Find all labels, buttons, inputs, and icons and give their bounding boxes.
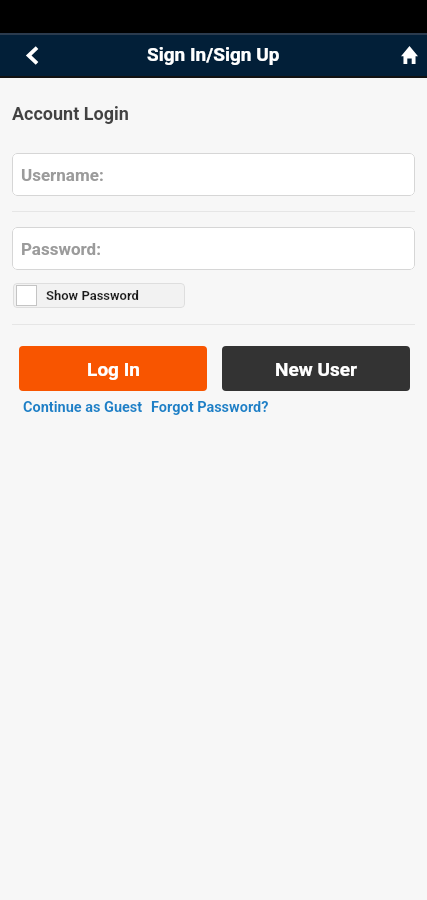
button[interactable]: Username: <box>12 153 415 196</box>
button[interactable]: New User <box>222 346 410 391</box>
staticText: Password: <box>21 239 101 259</box>
button[interactable]: Home <box>392 35 427 76</box>
button[interactable]: Forgot Password? <box>151 399 269 416</box>
staticText: New User <box>275 358 357 380</box>
staticText: Username: <box>21 165 104 185</box>
button[interactable]: Log In <box>19 346 207 391</box>
button[interactable]: Password: <box>12 227 415 270</box>
staticText: Sign In/Sign Up <box>147 43 280 65</box>
staticText: Account Login <box>12 103 129 124</box>
staticText: Log In <box>87 358 140 380</box>
button[interactable]: Show Password <box>13 283 185 308</box>
button[interactable]: Continue as Guest <box>23 399 143 416</box>
button[interactable]: Back <box>0 35 61 76</box>
staticText: Show Password <box>46 288 139 303</box>
